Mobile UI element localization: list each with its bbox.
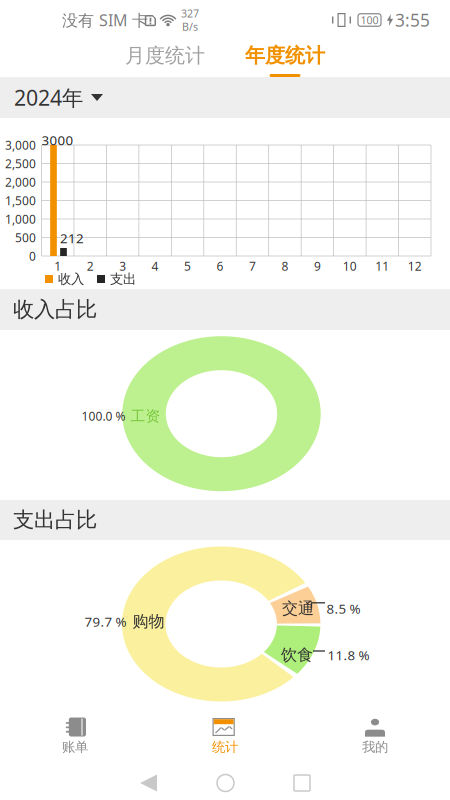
staticText: 11	[375, 258, 389, 274]
staticText: 4	[152, 258, 159, 274]
staticText: 2,000	[5, 174, 36, 190]
button[interactable]: 统计	[150, 705, 300, 766]
staticText: 327	[181, 6, 199, 20]
button[interactable]: 账单	[0, 705, 150, 766]
staticText: 支出	[110, 271, 136, 287]
button[interactable]: 2024年	[0, 77, 450, 118]
staticText: 3	[119, 258, 126, 274]
staticText: 1,500	[5, 192, 36, 208]
staticText: 100.0 %	[81, 408, 125, 424]
button[interactable]: 我的	[300, 705, 450, 766]
staticText: 2	[87, 258, 94, 274]
staticText: 2,500	[5, 155, 36, 171]
staticText: 购物	[132, 612, 164, 631]
staticText: 年度统计	[245, 43, 325, 68]
staticText: 212	[60, 229, 84, 247]
staticText: 收入	[58, 271, 84, 287]
staticText: 统计	[212, 739, 238, 755]
staticText: 工资	[130, 407, 160, 425]
staticText: 7	[249, 258, 256, 274]
staticText: 账单	[62, 739, 88, 755]
staticText: 0	[29, 248, 36, 264]
staticText: 8	[281, 258, 288, 274]
staticText: 饮食	[281, 645, 313, 665]
staticText: 11.8 %	[327, 646, 369, 664]
staticText: 2024年	[14, 83, 83, 112]
button[interactable]: Home	[217, 774, 234, 791]
staticText: 我的	[362, 739, 388, 755]
staticText: 3,000	[5, 137, 36, 153]
button[interactable]: Back	[140, 774, 157, 791]
staticText: 1	[54, 258, 61, 274]
staticText: 6	[216, 258, 223, 274]
staticText: 5	[184, 258, 191, 274]
button[interactable]: 年度统计	[225, 37, 345, 77]
staticText: 1,000	[5, 211, 36, 227]
staticText: 支出占比	[13, 507, 97, 533]
staticText: 收入占比	[13, 296, 97, 323]
button[interactable]: 月度统计	[105, 37, 225, 77]
staticText: 交通	[282, 599, 314, 618]
staticText: 3:55	[395, 8, 430, 31]
staticText: 79.7 %	[84, 613, 126, 630]
staticText: 100	[360, 13, 378, 27]
staticText: 没有 SIM 卡	[62, 9, 148, 31]
staticText: B/s	[182, 19, 198, 34]
staticText: 9	[314, 258, 321, 274]
staticText: 3000	[41, 131, 73, 149]
staticText: 月度统计	[125, 43, 205, 68]
staticText: 8.5 %	[326, 600, 360, 617]
staticText: 10	[343, 258, 357, 274]
staticText: 12	[408, 258, 422, 274]
button[interactable]: Recent apps	[294, 775, 310, 791]
staticText: 500	[15, 229, 36, 245]
